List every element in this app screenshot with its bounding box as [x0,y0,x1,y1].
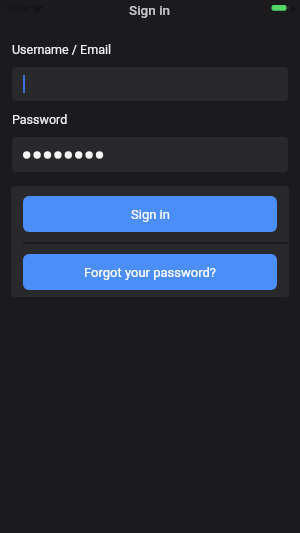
button[interactable]: Sign in [23,196,277,232]
staticText: Password [12,112,68,127]
button[interactable]: Forgot your password? [23,254,277,290]
staticText: Sign in [129,2,171,18]
button[interactable] [12,67,288,101]
staticText: Sign in [131,207,170,222]
staticText: Forgot your password? [84,265,216,280]
button[interactable] [12,137,288,172]
staticText: Username / Email [12,42,112,57]
